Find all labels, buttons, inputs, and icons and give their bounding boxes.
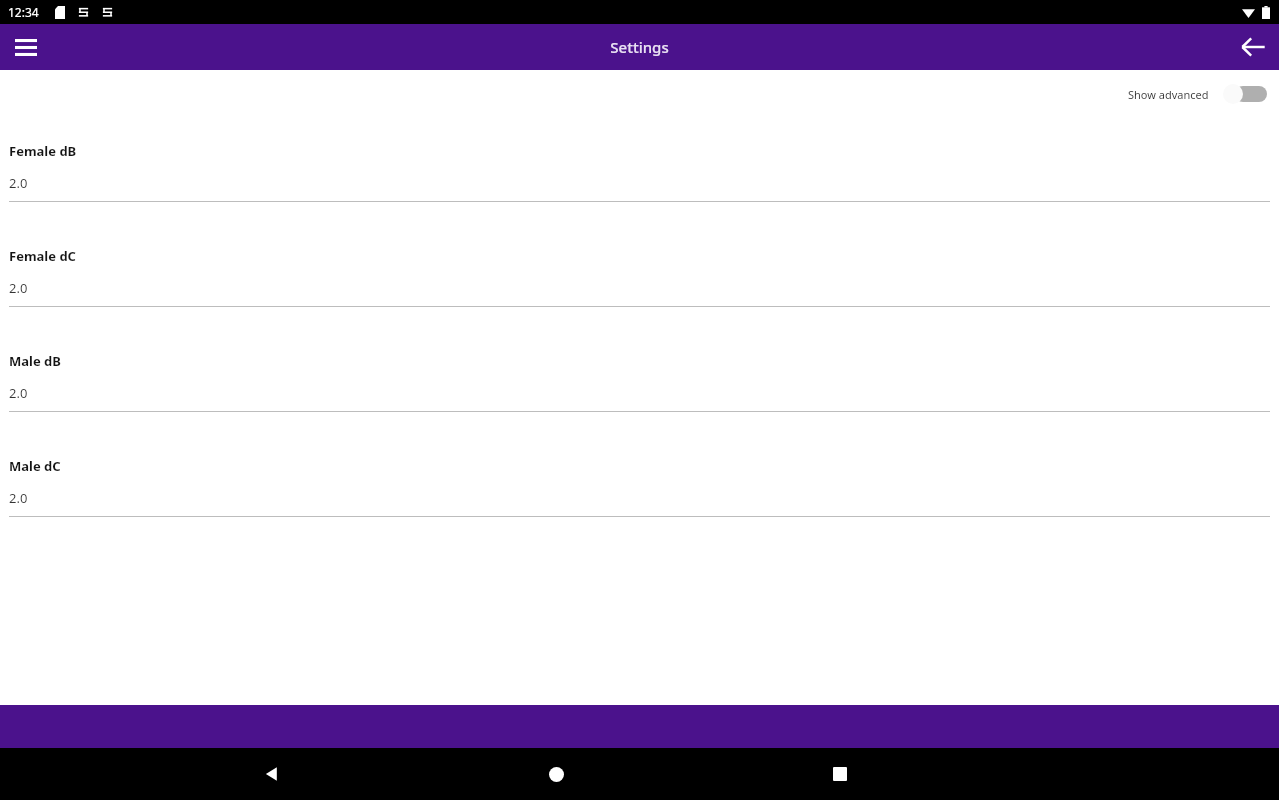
staticText: Settings	[610, 37, 669, 57]
staticText: 12:34	[8, 4, 39, 20]
button[interactable]: Open navigation menu	[6, 27, 46, 67]
button[interactable]: Show advanced	[1128, 84, 1267, 104]
button[interactable]: Home	[501, 748, 611, 800]
button[interactable]: Male dB	[0, 328, 1279, 433]
button[interactable]: Female dC	[0, 223, 1279, 328]
staticText: Male dC	[9, 457, 61, 475]
staticText: Show advanced	[1128, 87, 1209, 102]
button[interactable]: Male dC	[0, 433, 1279, 538]
staticText: 2.0	[9, 279, 28, 297]
staticText: 2.0	[9, 174, 28, 192]
staticText: Female dC	[9, 247, 76, 265]
button[interactable]: Female dB	[0, 118, 1279, 223]
button[interactable]: Back	[217, 748, 327, 800]
staticText: Male dB	[9, 352, 61, 370]
button[interactable]: Recent apps	[785, 748, 895, 800]
button[interactable]: Back	[1233, 27, 1273, 67]
staticText: 2.0	[9, 384, 28, 402]
staticText: Female dB	[9, 142, 77, 160]
staticText: 2.0	[9, 489, 28, 507]
